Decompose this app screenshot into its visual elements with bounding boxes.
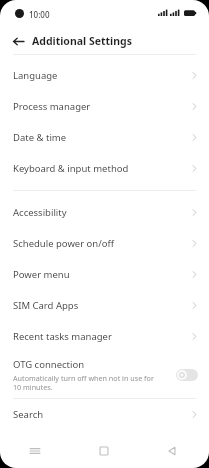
staticText: Accessibility	[13, 206, 191, 219]
button[interactable]: Power menu	[0, 259, 209, 290]
staticText: Recent tasks manager	[13, 330, 191, 343]
staticText: Search	[13, 408, 191, 421]
staticText: Automatically turn off when not in use f…	[13, 373, 158, 393]
button[interactable]: Recent tasks manager	[0, 321, 209, 352]
button[interactable]: OTG connection	[0, 352, 209, 398]
button[interactable]: Process manager	[0, 91, 209, 122]
staticText: Power menu	[13, 268, 191, 281]
button[interactable]: Back	[139, 434, 209, 468]
button[interactable]: OTG connection toggle	[176, 369, 198, 381]
staticText: Process manager	[13, 100, 191, 113]
button[interactable]: Language	[0, 60, 209, 91]
button[interactable]: Search	[0, 399, 209, 430]
staticText: 10:00	[29, 9, 50, 20]
staticText: Additional Settings	[32, 34, 132, 48]
button[interactable]: Recent apps	[0, 434, 69, 468]
staticText: SIM Card Apps	[13, 299, 191, 312]
staticText: Language	[13, 69, 191, 82]
button[interactable]: Date & time	[0, 122, 209, 153]
button[interactable]: Home	[69, 434, 139, 468]
button[interactable]: Accessibility	[0, 197, 209, 228]
button[interactable]: Keyboard & input method	[0, 153, 209, 184]
staticText: Keyboard & input method	[13, 162, 191, 175]
button[interactable]: SIM Card Apps	[0, 290, 209, 321]
staticText: Schedule power on/off	[13, 237, 191, 250]
staticText: OTG connection	[13, 358, 85, 371]
staticText: Date & time	[13, 131, 191, 144]
button[interactable]: Back	[9, 32, 27, 50]
button[interactable]: Schedule power on/off	[0, 228, 209, 259]
